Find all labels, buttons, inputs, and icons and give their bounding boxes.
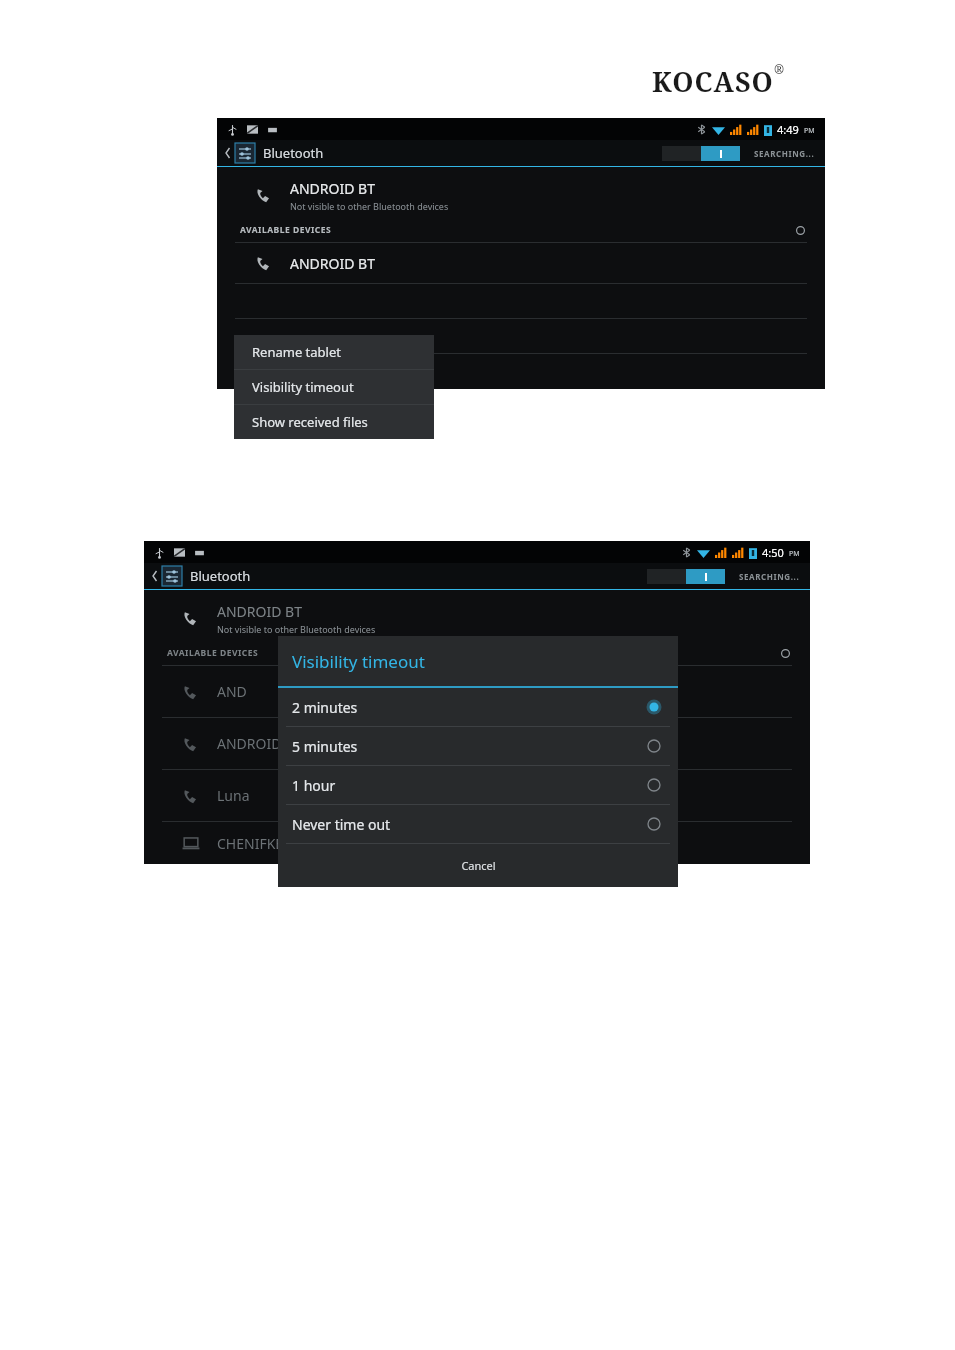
button[interactable]: AND [144,666,810,717]
button[interactable]: Cancel [278,844,678,887]
staticText: Rename tablet [252,343,341,361]
staticText: ANDROID BT [217,734,302,753]
button[interactable]: ANDROID BT [217,243,825,283]
button[interactable]: Bluetooth toggle [662,146,740,161]
button[interactable]: ANDROID BT [144,718,810,769]
staticText: Visibility timeout [252,378,354,396]
button[interactable]: Bluetooth toggle [647,569,725,584]
button[interactable]: CHENIFKE-PC [144,822,810,864]
button[interactable]: Settings [235,143,255,163]
staticText: 4:50 [762,545,784,560]
staticText: ANDROID BT [217,602,302,621]
staticText: SEARCHING... [739,571,800,582]
staticText: Luna [217,786,250,805]
staticText: 5 minutes [292,737,358,756]
staticText: Visibility timeout [292,650,425,673]
staticText: KOCASO [652,63,774,100]
staticText: Cancel [461,858,496,873]
staticText: ANDROID BT [290,254,375,273]
button[interactable]: Rename tablet [234,335,434,369]
button[interactable]: Settings [162,566,182,586]
staticText: 2 minutes [292,698,358,717]
staticText: SEARCHING... [754,148,815,159]
button[interactable]: 5 minutes [278,727,678,765]
staticText: AVAILABLE DEVICES [240,224,332,236]
staticText: 1 hour [292,776,336,795]
button[interactable]: 1 hour [278,766,678,804]
staticText: ANDROID BT [290,179,375,198]
staticText: Not visible to other Bluetooth devices [217,623,376,635]
button[interactable]: Back [148,569,162,583]
button[interactable]: Back [221,146,235,160]
staticText: PM [789,549,800,559]
staticText: CHENIFKE-PC [217,834,305,853]
staticText: Not visible to other Bluetooth devices [290,200,449,212]
button[interactable]: Luna [144,770,810,821]
staticText: AND [217,682,247,701]
staticText: AVAILABLE DEVICES [167,647,259,659]
button[interactable]: Never time out [278,805,678,843]
button[interactable]: Visibility timeout [234,370,434,404]
staticText: Never time out [292,815,391,834]
staticText: PM [804,126,815,136]
staticText: Bluetooth [190,567,251,585]
button[interactable]: Show received files [234,405,434,439]
staticText: 4:49 [777,122,799,137]
button[interactable]: ANDROID BT [144,596,810,640]
staticText: Bluetooth [263,144,324,162]
button[interactable]: ANDROID BT [217,173,825,217]
staticText: ® [774,61,785,77]
button[interactable]: 2 minutes [278,688,678,726]
staticText: Show received files [252,413,368,431]
